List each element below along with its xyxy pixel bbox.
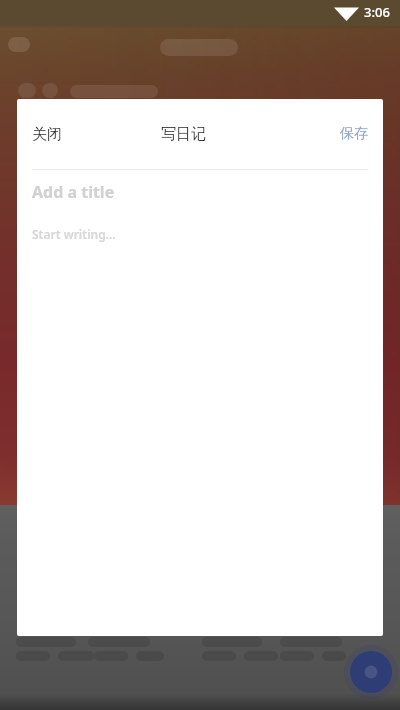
staticText: 写日记	[161, 125, 206, 144]
button[interactable]: Add a title	[17, 170, 383, 214]
staticText: 关闭	[32, 125, 62, 144]
button[interactable]: Start writing...	[17, 214, 383, 254]
staticText: Start writing...	[32, 226, 116, 242]
staticText: Add a title	[32, 181, 115, 203]
staticText: 3:06	[364, 3, 390, 21]
staticText: 保存	[340, 125, 368, 143]
button[interactable]: 关闭	[23, 116, 71, 153]
button[interactable]: 保存	[331, 116, 377, 152]
